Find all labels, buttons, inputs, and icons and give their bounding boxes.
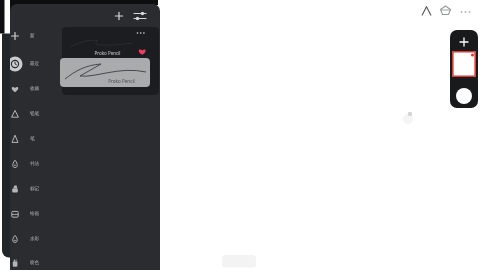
button[interactable]: 绘画 [10, 203, 60, 225]
button[interactable]: 书法 [10, 153, 60, 175]
button[interactable] [132, 8, 149, 24]
staticText: 新 [30, 33, 35, 39]
staticText: 笔 [30, 136, 35, 142]
button[interactable] [111, 8, 127, 24]
button[interactable]: 最近 [10, 53, 60, 75]
staticText: 水彩 [30, 236, 40, 242]
button[interactable]: 收藏 [10, 78, 60, 100]
button[interactable] [455, 33, 473, 50]
button[interactable]: 喷色 [10, 252, 60, 270]
button[interactable]: Proko Pencil [60, 58, 150, 87]
button[interactable] [452, 51, 476, 77]
button[interactable] [135, 45, 150, 59]
staticText: Proko Pencil [106, 78, 137, 86]
staticText: 铅笔 [30, 111, 40, 117]
button[interactable] [456, 88, 472, 104]
button[interactable] [132, 27, 150, 39]
staticText: 标记 [30, 186, 40, 192]
button[interactable]: 水彩 [10, 228, 60, 250]
staticText: 最近 [30, 61, 40, 67]
button[interactable]: 新 [10, 25, 60, 47]
button[interactable] [419, 3, 434, 18]
staticText: 书法 [30, 161, 40, 167]
staticText: 绘画 [30, 211, 40, 217]
staticText: Proko Pencil [92, 50, 123, 58]
staticText: 收藏 [30, 86, 40, 92]
button[interactable] [438, 3, 454, 19]
button[interactable] [457, 5, 474, 19]
button[interactable]: 标记 [10, 178, 60, 200]
button[interactable]: Proko Pencil [62, 35, 159, 61]
button[interactable]: 笔 [10, 128, 60, 150]
button[interactable]: 铅笔 [10, 103, 60, 125]
staticText: 喷色 [30, 260, 40, 266]
